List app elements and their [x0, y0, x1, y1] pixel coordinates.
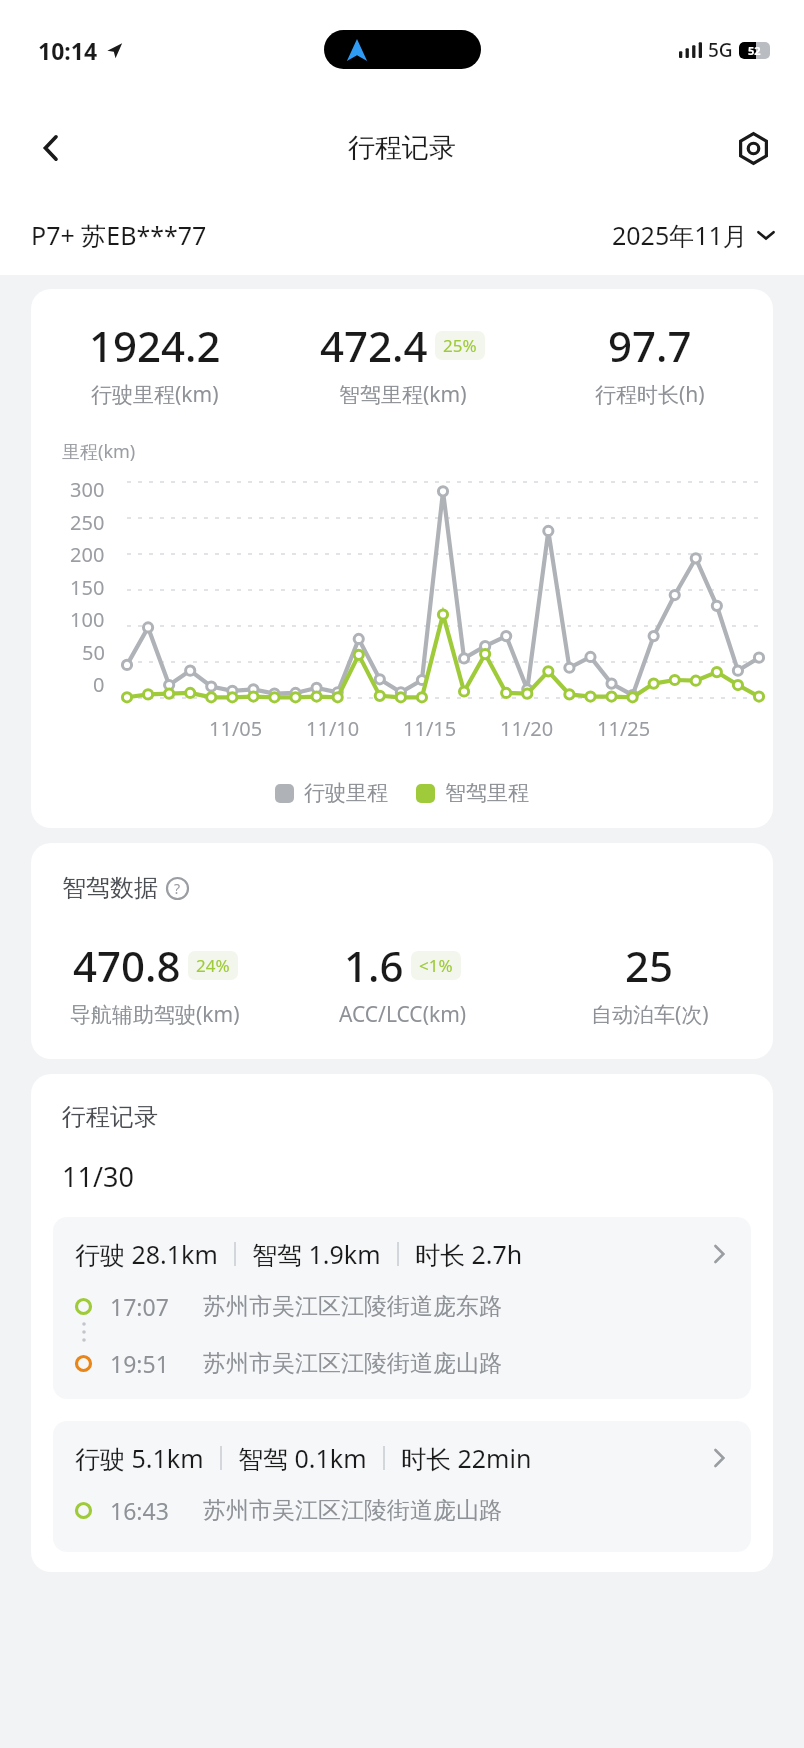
staticText: 苏州市吴江区江陵街道庞山路 [203, 1496, 502, 1525]
staticText: 11/30 [62, 1158, 134, 1195]
staticText: 10:14 [38, 35, 98, 66]
staticText: 2025年11月 [612, 218, 748, 252]
staticText: 250 [70, 509, 105, 536]
staticText: 11/15 [403, 715, 457, 742]
staticText: 300 [70, 476, 105, 503]
staticText: 智驾 0.1km [238, 1441, 367, 1475]
staticText: 行程记录 [62, 1102, 158, 1132]
staticText: 行程时长(h) [595, 380, 705, 409]
staticText: P7+ 苏EB***77 [31, 218, 207, 252]
staticText: 5G [708, 37, 733, 63]
staticText: 11/25 [597, 715, 651, 742]
staticText: 25 [625, 937, 674, 994]
staticText: 时长 22min [401, 1441, 532, 1475]
staticText: 52 [748, 43, 761, 58]
button[interactable]: Back [26, 123, 76, 173]
staticText: 1924.2 [89, 317, 221, 374]
button[interactable]: 2025年11月 [612, 218, 776, 252]
staticText: 智驾里程 [445, 780, 529, 806]
staticText: 行驶 28.1km [75, 1237, 218, 1271]
staticText: 行程记录 [348, 131, 456, 165]
staticText: 24% [196, 954, 230, 977]
staticText: 200 [70, 541, 105, 568]
staticText: 17:07 [110, 1291, 169, 1322]
staticText: 行驶里程(km) [91, 380, 219, 409]
staticText: 472.4 [320, 317, 428, 374]
staticText: 19:51 [110, 1348, 169, 1379]
staticText: 里程(km) [62, 439, 136, 464]
button[interactable]: 行驶 28.1km [53, 1217, 751, 1399]
staticText: 智驾 1.9km [252, 1237, 381, 1271]
staticText: 0 [93, 671, 105, 698]
staticText: 1.6 [344, 937, 404, 994]
staticText: 11/10 [306, 715, 360, 742]
staticText: 25% [443, 334, 477, 357]
staticText: 100 [70, 606, 105, 633]
staticText: ? [174, 879, 181, 898]
staticText: 97.7 [608, 317, 692, 374]
staticText: 时长 2.7h [415, 1237, 523, 1271]
staticText: 苏州市吴江区江陵街道庞东路 [203, 1292, 502, 1321]
staticText: 11/20 [500, 715, 554, 742]
staticText: 苏州市吴江区江陵街道庞山路 [203, 1349, 502, 1378]
staticText: 导航辅助驾驶(km) [70, 1000, 240, 1029]
staticText: 11/05 [209, 715, 263, 742]
staticText: 150 [70, 574, 105, 601]
staticText: 智驾里程(km) [339, 380, 467, 409]
button[interactable]: Settings [728, 123, 778, 173]
staticText: <1% [419, 954, 453, 977]
staticText: 16:43 [110, 1495, 169, 1526]
staticText: ACC/LCC(km) [339, 1000, 467, 1029]
staticText: 行驶里程 [304, 780, 388, 806]
staticText: 自动泊车(次) [591, 1000, 709, 1029]
button[interactable]: Help [166, 877, 189, 900]
staticText: 50 [82, 639, 105, 666]
staticText: 行驶 5.1km [75, 1441, 204, 1475]
button[interactable]: 行驶 5.1km [53, 1421, 751, 1552]
staticText: 470.8 [73, 937, 181, 994]
staticText: 智驾数据 [62, 873, 158, 903]
